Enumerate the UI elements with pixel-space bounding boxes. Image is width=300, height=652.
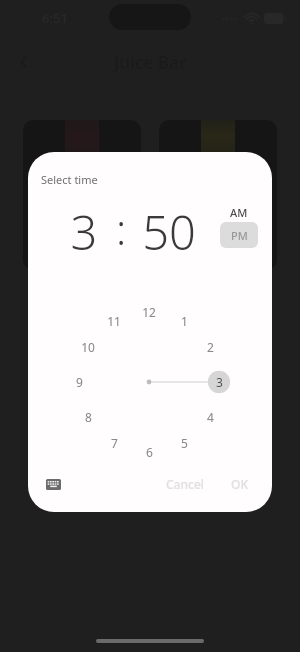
staticText: 11: [107, 313, 121, 329]
staticText: AM: [230, 205, 248, 220]
button[interactable]: PM: [220, 222, 258, 248]
button[interactable]: AM: [220, 202, 258, 222]
button[interactable]: 11: [101, 308, 127, 334]
staticText: 4: [207, 409, 214, 425]
button[interactable]: 1: [171, 308, 197, 334]
button[interactable]: 12: [136, 299, 162, 325]
staticText: 5: [181, 435, 188, 451]
staticText: 12: [142, 304, 156, 320]
staticText: Select time: [41, 172, 98, 187]
staticText: 1: [181, 313, 188, 329]
button[interactable]: [23, 120, 141, 270]
button[interactable]: [159, 120, 277, 270]
staticText: :: [116, 200, 127, 257]
staticText: 9: [76, 374, 83, 390]
staticText: PM: [231, 228, 248, 243]
staticText: 10: [81, 339, 95, 355]
staticText: 7: [111, 435, 118, 451]
staticText: 6: [146, 444, 153, 460]
button[interactable]: 10: [75, 334, 101, 360]
button[interactable]: Cancel: [156, 470, 215, 498]
staticText: Cancel: [166, 476, 205, 492]
staticText: 3: [216, 374, 223, 390]
staticText: 8: [85, 409, 92, 425]
button[interactable]: 5: [171, 430, 197, 456]
button[interactable]: 3: [64, 200, 104, 258]
button[interactable]: Switch to text input: [38, 469, 68, 499]
button[interactable]: 8: [75, 404, 101, 430]
button[interactable]: 6: [136, 439, 162, 465]
button[interactable]: 9: [66, 369, 92, 395]
button[interactable]: OK: [221, 470, 258, 498]
button[interactable]: 50: [138, 200, 200, 258]
staticText: OK: [231, 476, 248, 492]
button[interactable]: 2: [197, 334, 223, 360]
button[interactable]: 4: [197, 404, 223, 430]
button[interactable]: 7: [101, 430, 127, 456]
button[interactable]: 3: [206, 369, 232, 395]
staticText: 2: [207, 339, 214, 355]
